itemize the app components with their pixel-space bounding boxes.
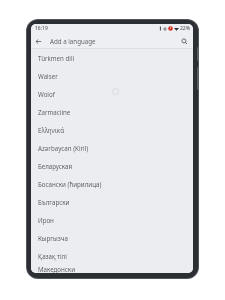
staticText: Ελληνικά — [38, 126, 64, 134]
staticText: 22% — [180, 25, 190, 32]
button[interactable]: Босански (ћирилица) — [31, 175, 193, 193]
staticText: Zarmaciine — [38, 108, 71, 116]
button[interactable]: Zarmaciine — [31, 103, 193, 121]
button[interactable]: Қазақ тілі — [31, 247, 193, 265]
button[interactable]: Power — [197, 47, 199, 61]
staticText: Türkmen dili — [38, 54, 75, 62]
button[interactable]: Walser — [31, 67, 193, 85]
staticText: Босански (ћирилица) — [38, 180, 102, 188]
button[interactable]: Ελληνικά — [31, 121, 193, 139]
staticText: Walser — [38, 72, 58, 80]
staticText: Кыргызча — [38, 234, 68, 242]
button[interactable]: Ирон — [31, 211, 193, 229]
button[interactable]: Türkmen dili — [31, 49, 193, 67]
staticText: Български — [38, 198, 70, 206]
staticText: Қазақ тілі — [38, 252, 67, 260]
staticText: Azərbaycan (Kiril) — [38, 144, 89, 152]
button[interactable]: Македонски — [31, 265, 193, 273]
staticText: 16:19 — [35, 25, 48, 32]
button[interactable]: Български — [31, 193, 193, 211]
button[interactable]: Search — [177, 34, 191, 48]
staticText: Македонски — [38, 265, 75, 273]
staticText: Add a language — [50, 37, 96, 45]
staticText: Ирон — [38, 216, 54, 224]
staticText: Беларуская — [38, 162, 73, 170]
staticText: Wolof — [38, 90, 55, 98]
button[interactable]: Кыргызча — [31, 229, 193, 247]
button[interactable]: Беларуская — [31, 157, 193, 175]
button[interactable]: Wolof — [31, 85, 193, 103]
button[interactable]: Azərbaycan (Kiril) — [31, 139, 193, 157]
button[interactable]: Navigate up — [31, 34, 45, 48]
